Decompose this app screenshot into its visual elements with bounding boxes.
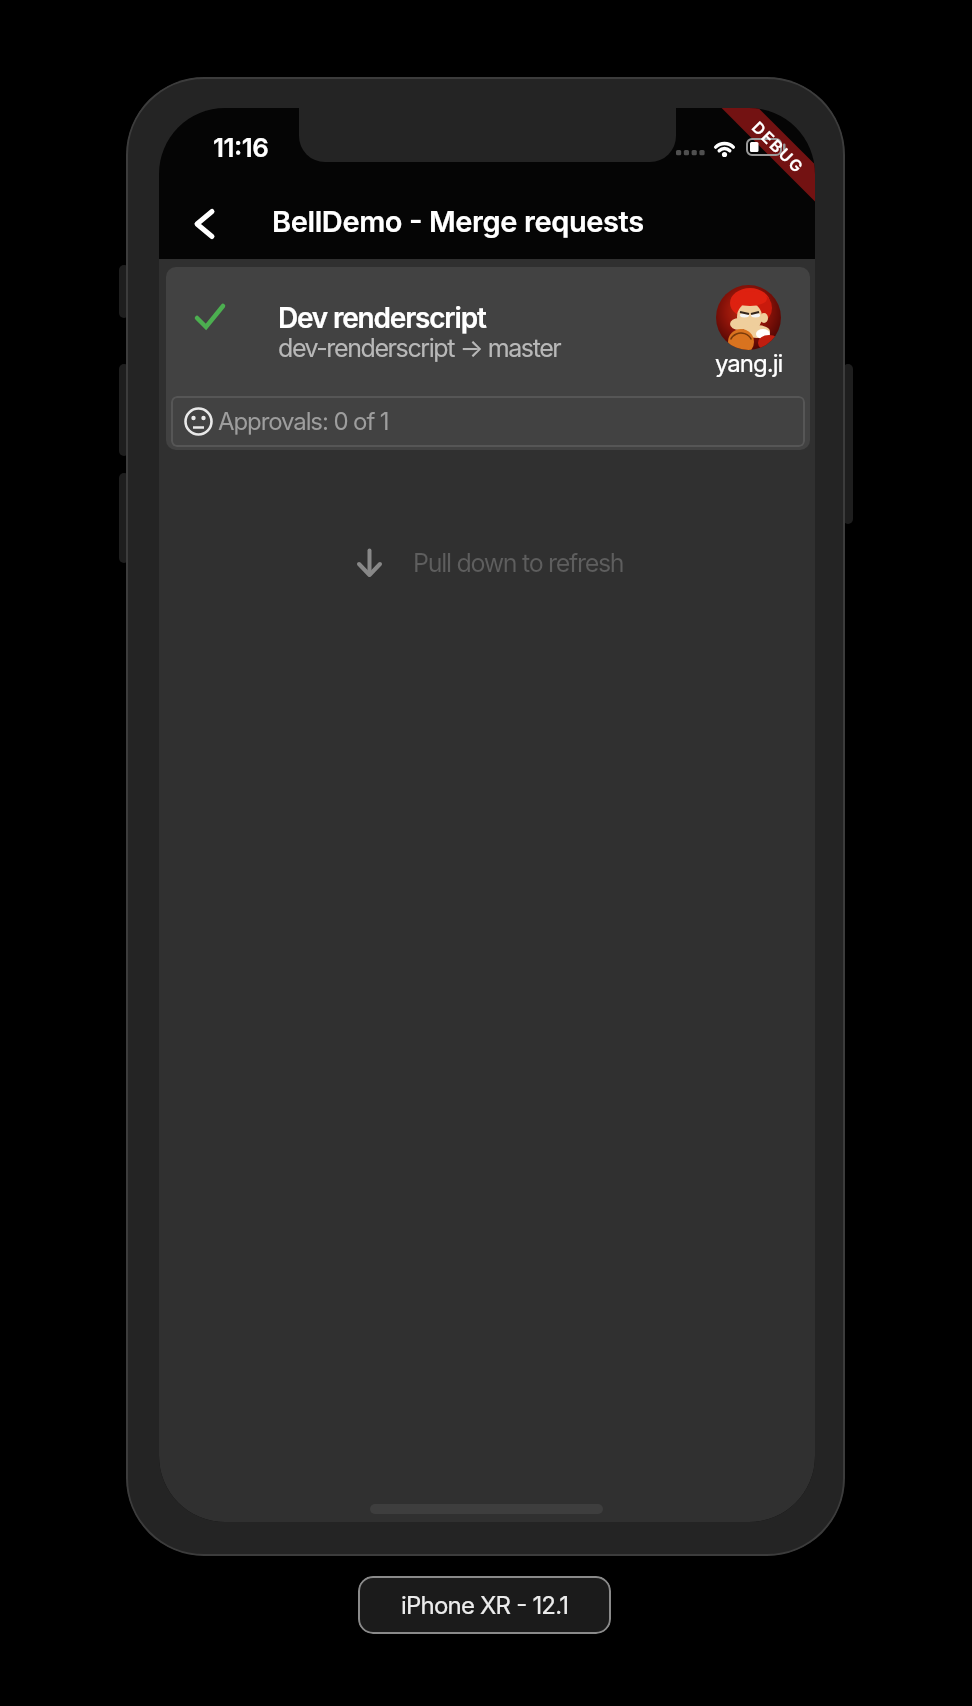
staticText: DEBUG	[749, 117, 809, 177]
button[interactable]	[185, 202, 223, 246]
staticText: 11:16	[213, 132, 269, 162]
staticText: Dev renderscript	[278, 301, 486, 335]
staticText: yang.ji	[715, 349, 783, 378]
staticText: iPhone XR - 12.1	[401, 1591, 569, 1620]
staticText: Approvals: 0 of 1	[218, 407, 389, 436]
staticText: dev-renderscript → master	[278, 333, 561, 363]
staticText: BellDemo - Merge requests	[272, 204, 644, 239]
staticText: Pull down to refresh	[413, 548, 624, 578]
button[interactable]: Approvals: 0 of 1	[171, 396, 805, 447]
button[interactable]: iPhone XR - 12.1	[358, 1576, 611, 1634]
button[interactable]: Dev renderscript	[166, 267, 810, 450]
